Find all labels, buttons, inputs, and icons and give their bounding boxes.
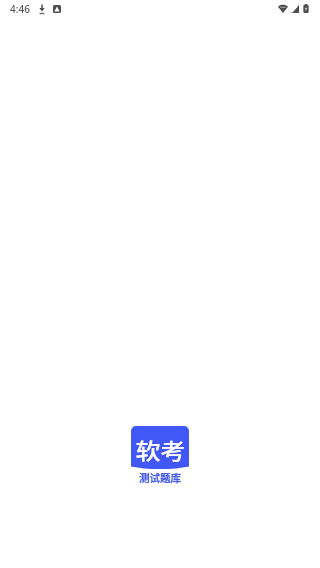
other: Screenshot captured [53, 5, 61, 13]
other: Battery charging [303, 4, 309, 13]
other: Wi-Fi [278, 5, 288, 13]
staticText: 测试题库 [139, 470, 181, 484]
button[interactable]: 软考 [131, 426, 189, 483]
staticText: 软考 [135, 433, 186, 465]
other: Download in progress [37, 4, 47, 14]
other: Mobile signal [291, 5, 299, 13]
staticText: 4:46 [10, 2, 30, 16]
